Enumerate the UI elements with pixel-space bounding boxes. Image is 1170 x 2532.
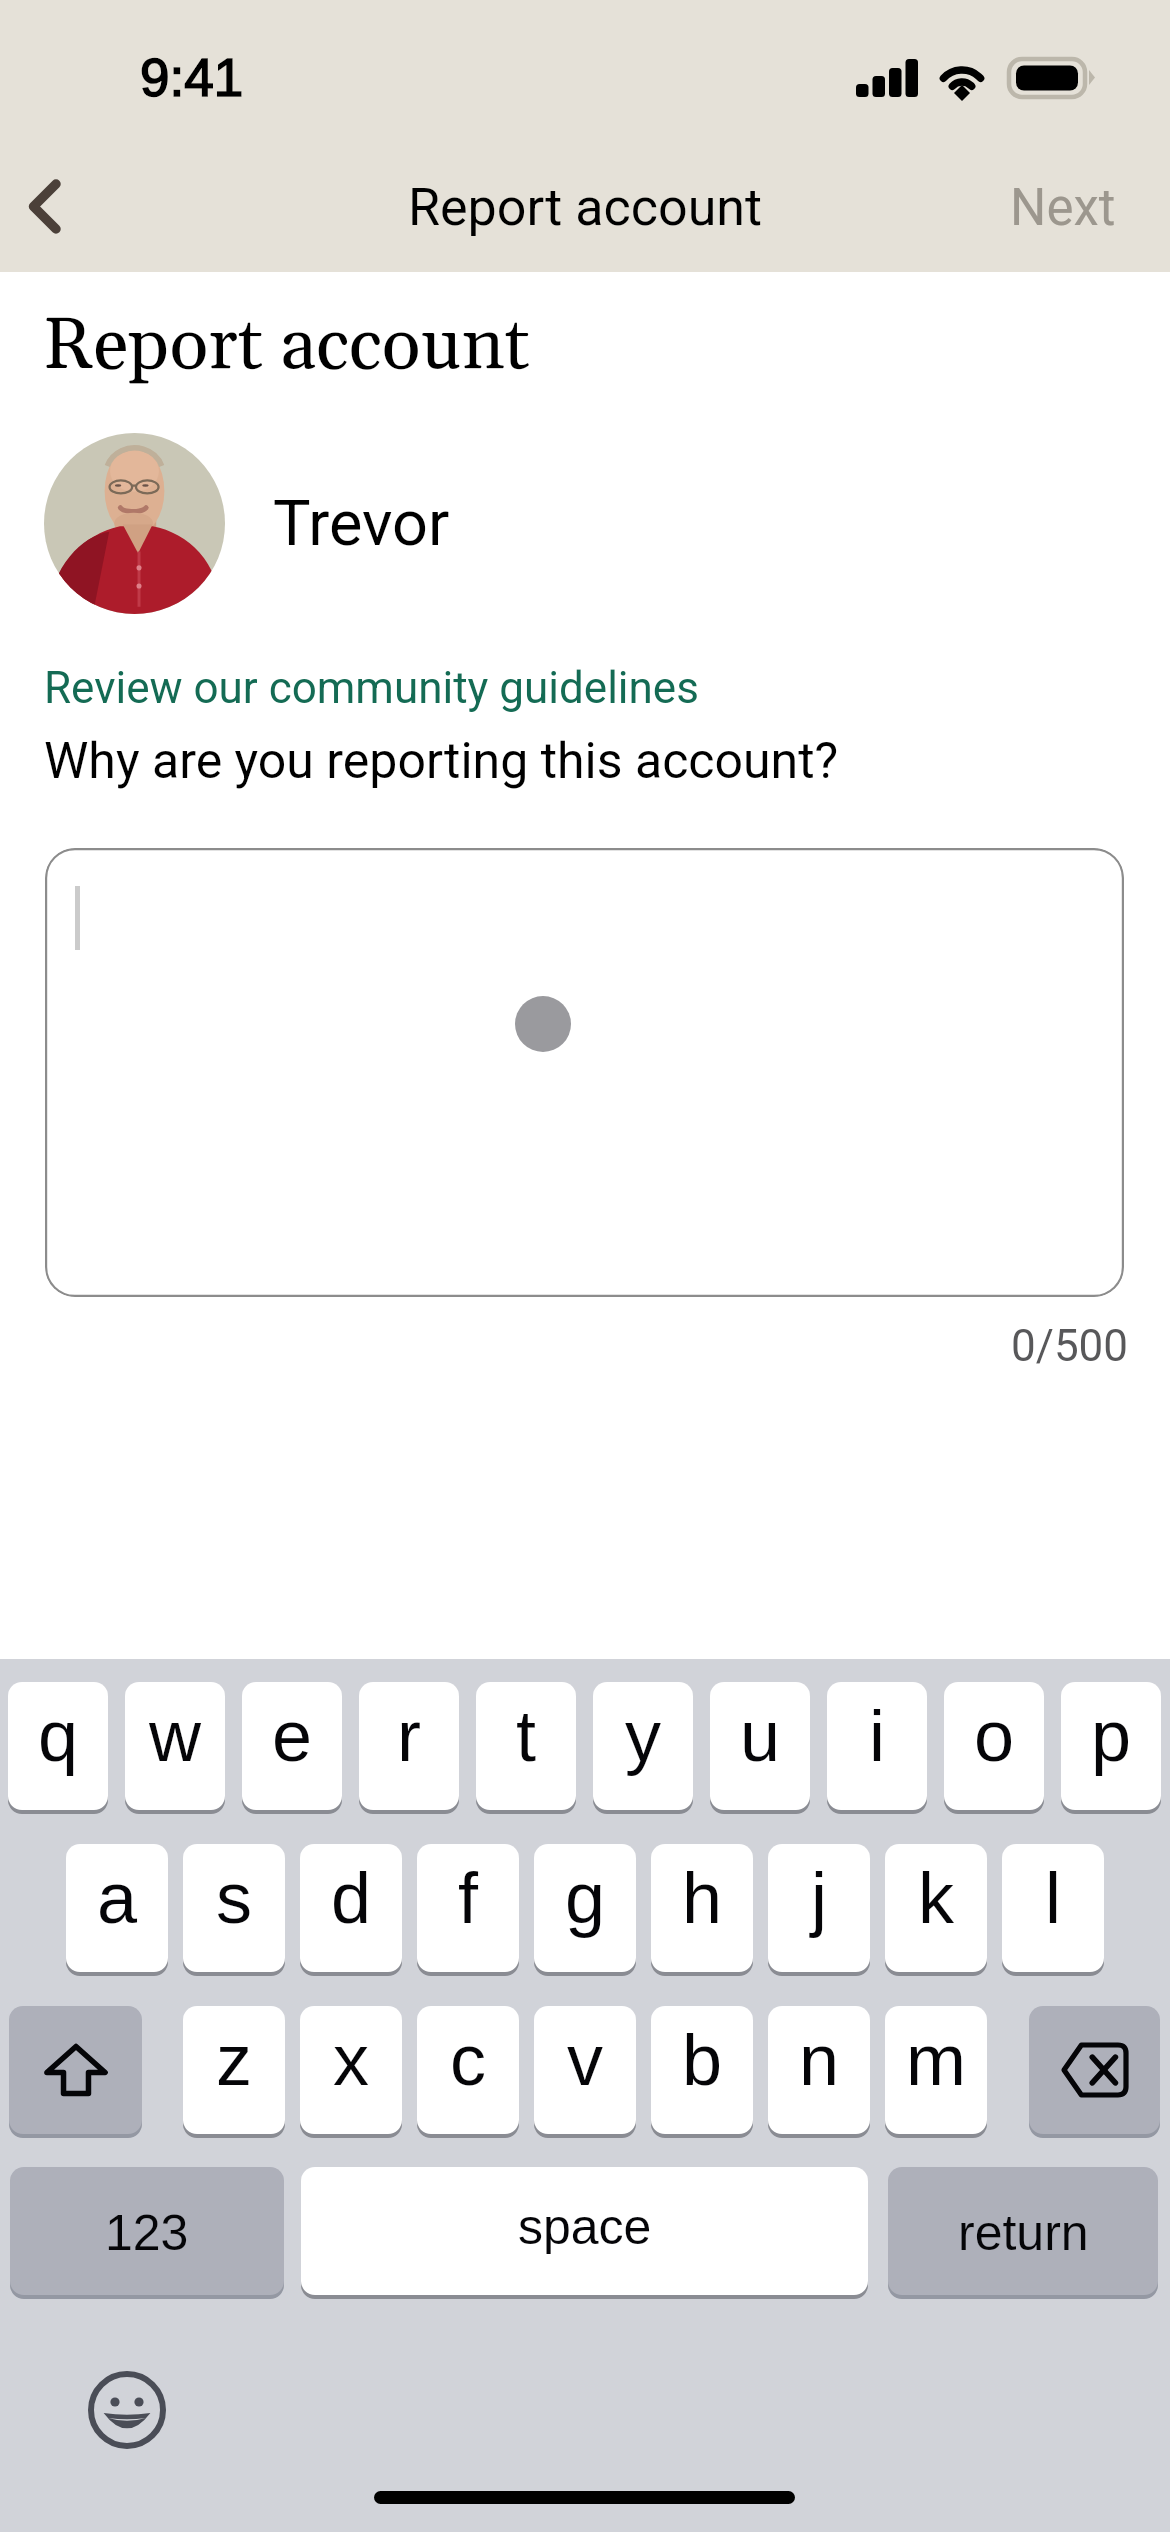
staticText: d — [331, 1858, 372, 1938]
staticText: Report account — [408, 177, 763, 238]
staticText: h — [682, 1858, 723, 1938]
button[interactable]: e — [242, 1682, 342, 1810]
staticText: Why are you reporting this account? — [44, 732, 839, 791]
staticText: c — [450, 2020, 486, 2100]
button[interactable]: j — [768, 1844, 870, 1972]
button[interactable]: z — [183, 2006, 285, 2134]
button[interactable]: s — [183, 1844, 285, 1972]
staticText: l — [1045, 1858, 1061, 1938]
button[interactable]: m — [885, 2006, 987, 2134]
staticText: a — [97, 1858, 138, 1938]
button[interactable]: t — [476, 1682, 576, 1810]
button[interactable]: w — [125, 1682, 225, 1810]
button[interactable] — [45, 848, 1124, 1297]
staticText: o — [974, 1696, 1015, 1776]
staticText: r — [397, 1696, 421, 1776]
staticText: 123 — [105, 2205, 189, 2261]
staticText: p — [1091, 1696, 1132, 1776]
button[interactable]: y — [593, 1682, 693, 1810]
button[interactable]: Shift — [9, 2006, 142, 2134]
staticText: Report account — [43, 301, 530, 392]
staticText: w — [149, 1696, 201, 1776]
staticText: u — [740, 1696, 781, 1776]
button[interactable]: Next — [978, 153, 1148, 263]
staticText: Trevor — [273, 487, 450, 561]
button[interactable]: f — [417, 1844, 519, 1972]
button[interactable]: x — [300, 2006, 402, 2134]
staticText: j — [811, 1858, 827, 1938]
staticText: n — [799, 2020, 840, 2100]
button[interactable]: n — [768, 2006, 870, 2134]
button[interactable]: Emoji keyboard — [88, 2371, 166, 2449]
button[interactable]: k — [885, 1844, 987, 1972]
staticText: i — [869, 1696, 885, 1776]
button[interactable]: Backspace — [1029, 2006, 1160, 2134]
staticText: k — [918, 1858, 954, 1938]
button[interactable]: q — [8, 1682, 108, 1810]
button[interactable]: space — [301, 2167, 868, 2295]
button[interactable]: v — [534, 2006, 636, 2134]
button[interactable]: a — [66, 1844, 168, 1972]
staticText: x — [333, 2020, 369, 2100]
staticText: v — [567, 2020, 603, 2100]
button[interactable]: g — [534, 1844, 636, 1972]
button[interactable]: b — [651, 2006, 753, 2134]
staticText: Review our community guidelines — [44, 662, 699, 714]
button[interactable]: Review our community guidelines — [44, 662, 699, 714]
button[interactable]: return — [888, 2167, 1158, 2295]
button[interactable]: u — [710, 1682, 810, 1810]
button[interactable]: r — [359, 1682, 459, 1810]
button[interactable]: o — [944, 1682, 1044, 1810]
button[interactable]: 123 — [10, 2167, 284, 2295]
staticText: b — [682, 2020, 723, 2100]
button[interactable]: p — [1061, 1682, 1161, 1810]
staticText: Next — [1010, 178, 1116, 238]
staticText: return — [958, 2205, 1089, 2261]
button[interactable]: d — [300, 1844, 402, 1972]
button[interactable]: i — [827, 1682, 927, 1810]
staticText: space — [518, 2199, 652, 2255]
staticText: f — [458, 1858, 479, 1938]
staticText: 9:41 — [140, 48, 244, 107]
staticText: s — [216, 1858, 252, 1938]
button[interactable]: l — [1002, 1844, 1104, 1972]
staticText: y — [625, 1696, 661, 1776]
button[interactable]: h — [651, 1844, 753, 1972]
staticText: 0/500 — [1011, 1320, 1129, 1372]
button[interactable]: Back — [0, 152, 110, 262]
staticText: q — [38, 1696, 79, 1776]
staticText: g — [565, 1858, 606, 1938]
staticText: z — [216, 2020, 252, 2100]
staticText: e — [272, 1696, 313, 1776]
button[interactable]: c — [417, 2006, 519, 2134]
staticText: m — [906, 2020, 966, 2100]
staticText: t — [516, 1696, 537, 1776]
